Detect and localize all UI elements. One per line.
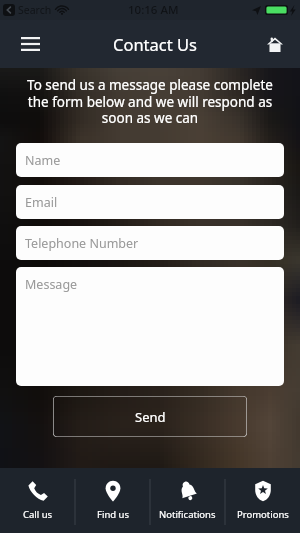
button[interactable]: Home <box>258 24 292 64</box>
button[interactable]: Email <box>16 185 284 219</box>
staticText: Name <box>25 152 61 169</box>
staticText: Telephone Number <box>25 235 139 252</box>
staticText: 10:16 AM <box>128 2 179 18</box>
button[interactable]: Call us <box>0 468 75 533</box>
staticText: Promotions <box>237 508 289 521</box>
button[interactable]: Promotions <box>225 468 300 533</box>
staticText: To send us a message please complete the… <box>17 76 283 127</box>
staticText: Search <box>18 3 52 17</box>
button[interactable]: Send <box>53 396 247 437</box>
staticText: Contact Us <box>113 33 197 55</box>
button[interactable]: Telephone Number <box>16 226 284 260</box>
button[interactable]: Notifications <box>150 468 225 533</box>
staticText: Find us <box>97 508 129 521</box>
button[interactable]: Name <box>16 143 284 177</box>
button[interactable]: Find us <box>75 468 150 533</box>
staticText: Call us <box>23 508 53 521</box>
button[interactable]: Message <box>16 267 284 386</box>
staticText: Email <box>25 194 58 211</box>
staticText: Notifications <box>159 508 216 521</box>
staticText: Send <box>135 408 166 426</box>
staticText: Message <box>25 276 78 293</box>
button[interactable]: Menu <box>13 24 47 64</box>
